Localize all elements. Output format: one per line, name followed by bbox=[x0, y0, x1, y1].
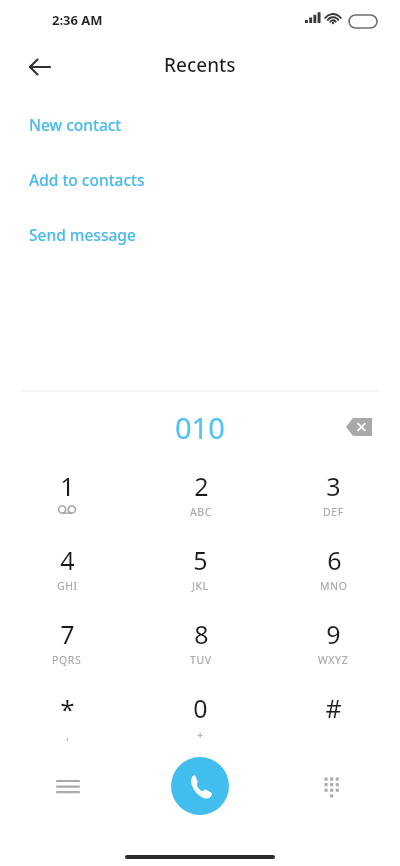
staticText: New contact bbox=[29, 114, 122, 135]
staticText: 3 bbox=[326, 469, 341, 503]
staticText: Add to contacts bbox=[29, 169, 145, 190]
staticText: 9 bbox=[326, 617, 341, 651]
button[interactable]: Send message bbox=[29, 222, 400, 247]
staticText: JKL bbox=[192, 579, 209, 593]
staticText: 1 bbox=[60, 469, 75, 503]
staticText: PQRS bbox=[52, 653, 82, 667]
staticText: 7 bbox=[60, 617, 75, 651]
staticText: DEF bbox=[323, 505, 344, 519]
staticText: 4 bbox=[60, 543, 75, 577]
staticText: WXYZ bbox=[318, 653, 349, 667]
button[interactable]: # bbox=[267, 680, 400, 754]
staticText: GHI bbox=[57, 579, 78, 593]
staticText: TUV bbox=[190, 653, 212, 667]
button[interactable]: * bbox=[0, 680, 134, 754]
staticText: , bbox=[66, 728, 70, 743]
staticText: Recents bbox=[164, 52, 236, 78]
button[interactable]: 7 bbox=[0, 606, 134, 680]
button[interactable]: Add to contacts bbox=[29, 167, 400, 192]
staticText: Send message bbox=[29, 224, 136, 245]
button[interactable]: 2 bbox=[134, 458, 267, 532]
button[interactable]: 1 bbox=[0, 458, 134, 532]
button[interactable]: Call bbox=[171, 757, 229, 815]
staticText: 2 bbox=[194, 469, 209, 503]
staticText: + bbox=[197, 727, 204, 742]
staticText: 0 bbox=[193, 691, 208, 725]
button[interactable]: Back bbox=[18, 45, 62, 89]
staticText: 8 bbox=[194, 617, 209, 651]
button[interactable]: 4 bbox=[0, 532, 134, 606]
button[interactable]: 9 bbox=[267, 606, 400, 680]
button[interactable]: Dialpad bbox=[310, 765, 354, 809]
button[interactable]: Call log menu bbox=[46, 765, 90, 809]
button[interactable]: 6 bbox=[267, 532, 400, 606]
staticText: * bbox=[60, 691, 75, 726]
staticText: # bbox=[325, 691, 342, 725]
staticText: ABC bbox=[190, 505, 212, 519]
button[interactable]: 0 bbox=[134, 680, 267, 754]
staticText: 010 bbox=[175, 408, 225, 447]
button[interactable]: 5 bbox=[134, 532, 267, 606]
staticText: 2:36 AM bbox=[52, 11, 103, 29]
button[interactable]: New contact bbox=[29, 112, 400, 137]
button[interactable]: 3 bbox=[267, 458, 400, 532]
staticText: 6 bbox=[327, 543, 342, 577]
staticText: MNO bbox=[320, 579, 348, 593]
button[interactable]: 8 bbox=[134, 606, 267, 680]
staticText: 5 bbox=[193, 543, 208, 577]
button[interactable]: Backspace bbox=[340, 408, 378, 446]
